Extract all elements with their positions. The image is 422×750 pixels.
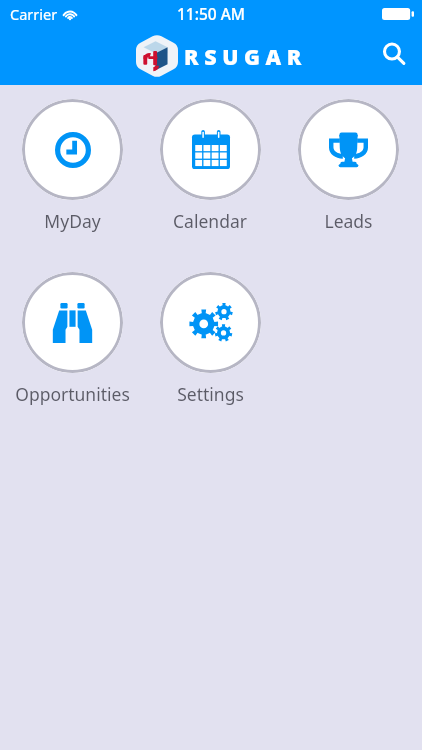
button[interactable]: Leads bbox=[279, 99, 417, 233]
button[interactable]: Settings bbox=[141, 272, 279, 406]
staticText: Leads bbox=[324, 209, 373, 233]
staticText: Settings bbox=[177, 382, 244, 406]
staticText: Opportunities bbox=[15, 382, 130, 406]
staticText: RSUGAR bbox=[184, 42, 307, 71]
staticText: 11:50 AM bbox=[177, 3, 246, 24]
staticText: MyDay bbox=[44, 209, 101, 233]
staticText: Calendar bbox=[173, 209, 247, 233]
button[interactable]: Opportunities bbox=[3, 272, 141, 406]
staticText: Carrier bbox=[10, 4, 58, 24]
button[interactable]: MyDay bbox=[3, 99, 141, 233]
button[interactable]: Search bbox=[372, 32, 416, 76]
button[interactable]: Calendar bbox=[141, 99, 279, 233]
